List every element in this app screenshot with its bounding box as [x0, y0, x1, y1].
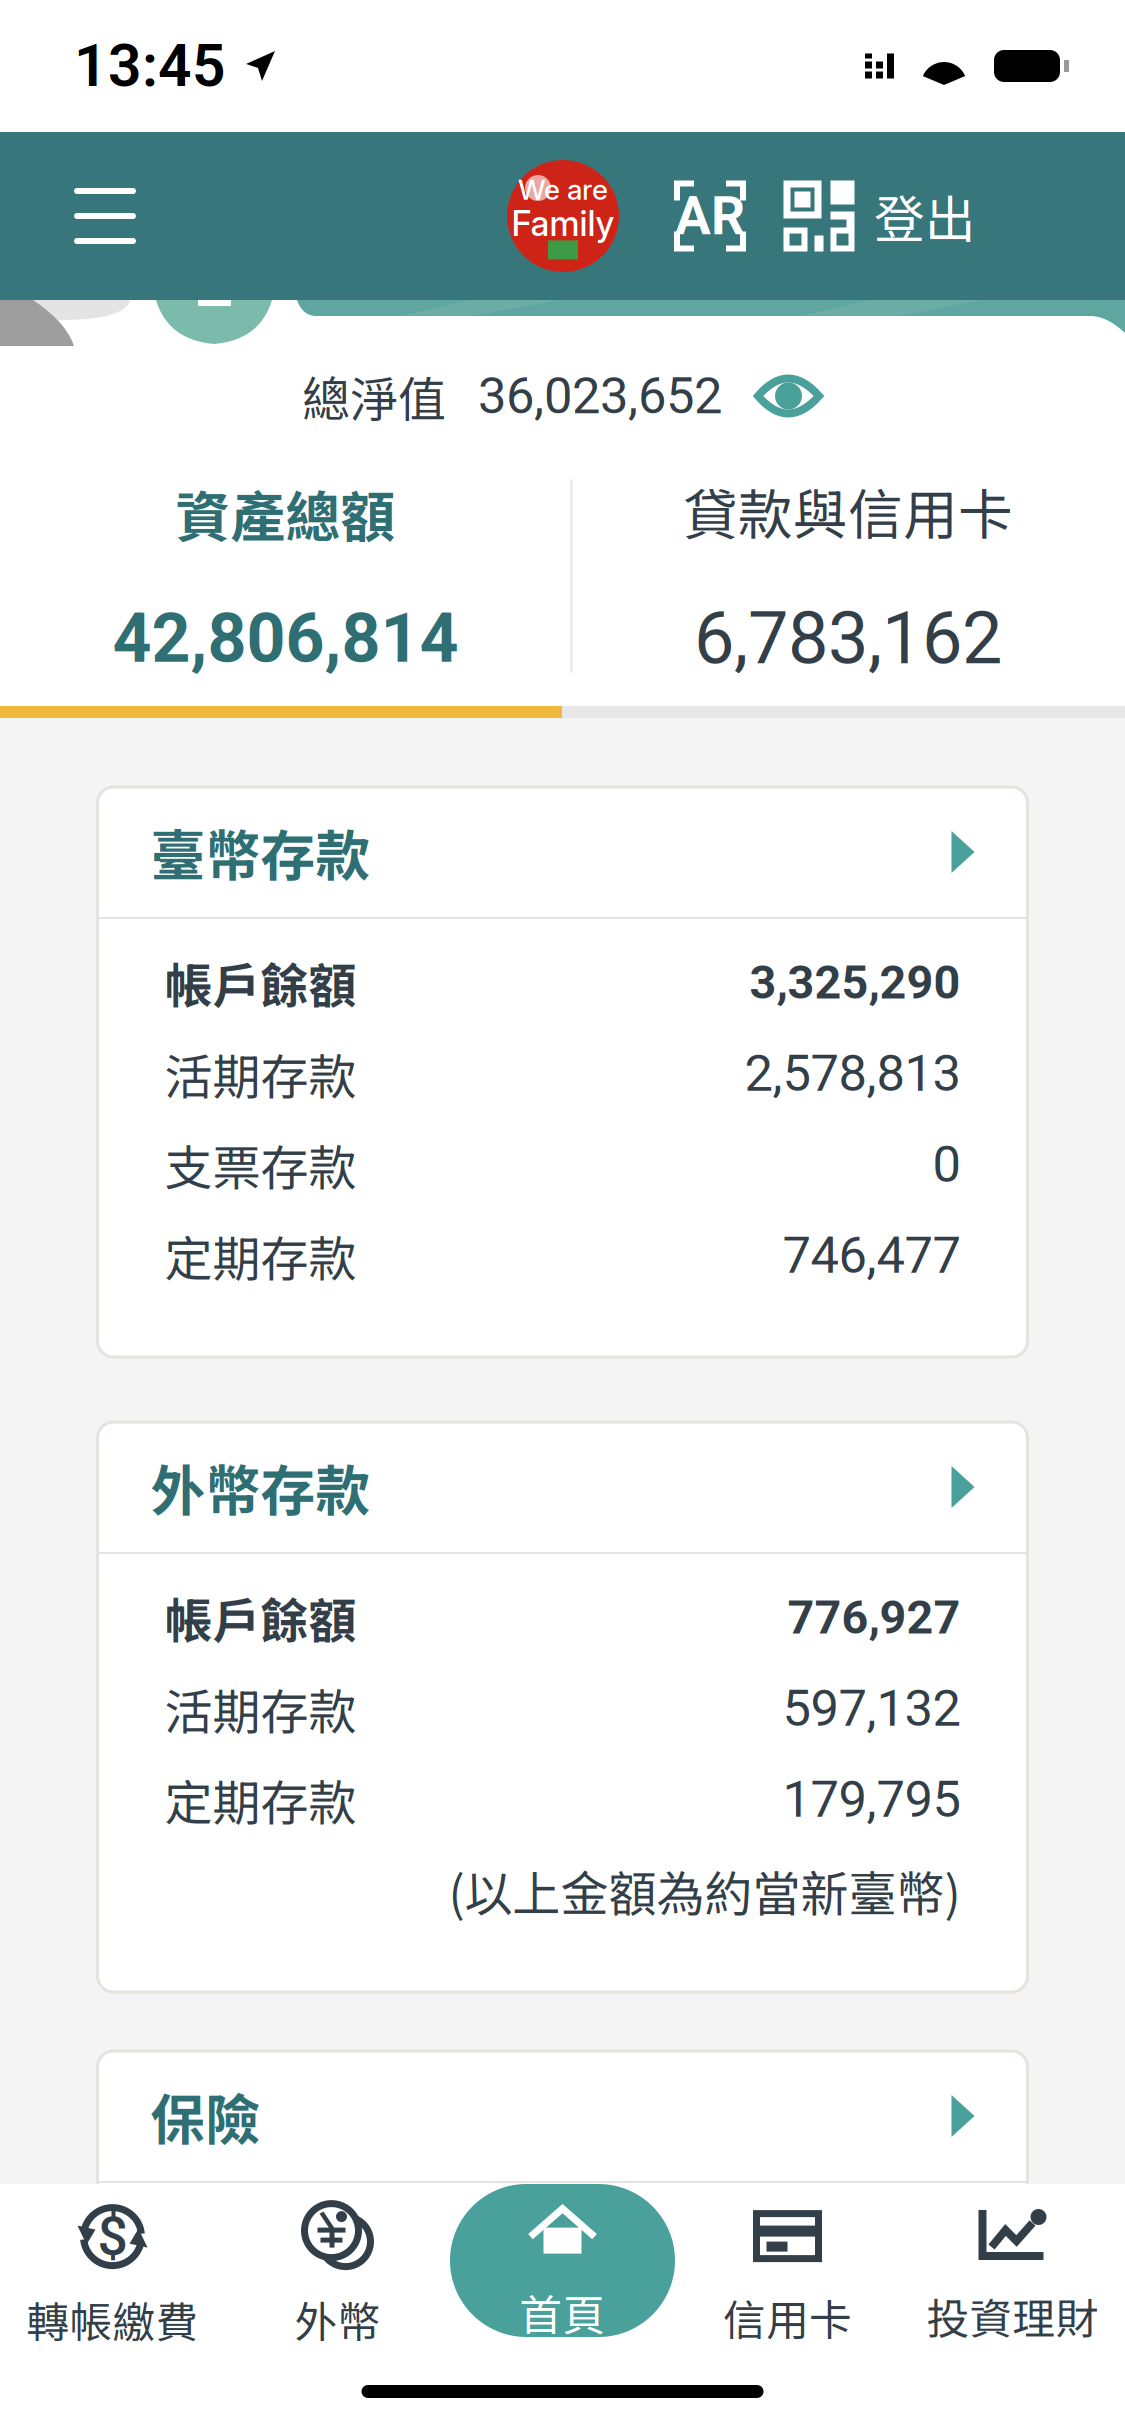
button[interactable]: Menu [0, 132, 136, 300]
staticText: 776,927 [787, 1590, 960, 1645]
button[interactable]: Scan QR code [764, 132, 874, 300]
button[interactable]: 信用卡 [675, 2184, 900, 2348]
staticText: 活期存款 [164, 1039, 356, 1108]
staticText: 外幣 [294, 2289, 380, 2350]
staticText: We are [518, 173, 608, 206]
staticText: (以上金額為約當新臺幣) [448, 1856, 960, 1925]
staticText: 13:45 [74, 32, 226, 100]
staticText: 信用卡 [723, 2287, 852, 2348]
staticText: 保險 [150, 2076, 260, 2156]
button[interactable]: 外幣存款 [97, 1422, 1027, 1552]
staticText: 3,325,290 [749, 955, 960, 1010]
staticText: 活期存款 [164, 1674, 356, 1743]
staticText: 42,806,814 [112, 599, 458, 678]
staticText: 登出 [874, 179, 976, 253]
staticText: 臺幣存款 [150, 812, 370, 892]
button[interactable]: 保險 [97, 2051, 1027, 2181]
staticText: 597,132 [782, 1679, 960, 1738]
staticText: 投資理財 [926, 2285, 1098, 2347]
staticText: 746,477 [782, 1226, 960, 1285]
staticText: Family [511, 202, 614, 244]
staticText: 外幣存款 [150, 1447, 370, 1527]
staticText: 貸款與信用卡 [683, 471, 1013, 550]
staticText: 定期存款 [164, 1765, 356, 1834]
staticText: 定期存款 [164, 1221, 356, 1290]
button[interactable]: Toggle balance visibility [754, 373, 823, 419]
staticText: 6,783,162 [694, 596, 1002, 681]
staticText: 資產總額 [175, 474, 395, 553]
button[interactable]: 投資理財 [900, 2184, 1125, 2348]
staticText: 支票存款 [164, 1130, 356, 1199]
staticText: 帳戶餘額 [164, 1583, 356, 1652]
staticText: 首頁 [519, 2282, 605, 2343]
staticText: 179,795 [782, 1770, 960, 1829]
staticText: 36,023,652 [478, 366, 722, 426]
staticText: 總淨值 [302, 361, 446, 431]
button[interactable]: AR [656, 132, 764, 300]
staticText: 轉帳繳費 [26, 2289, 198, 2350]
staticText: $ [97, 2205, 127, 2268]
button[interactable]: 首頁 [450, 2184, 675, 2348]
button[interactable]: $ [0, 2184, 225, 2348]
staticText: 帳戶餘額 [164, 948, 356, 1017]
staticText: 2,578,813 [744, 1044, 960, 1103]
button[interactable]: 登出 [874, 132, 1013, 300]
button[interactable]: 臺幣存款 [97, 787, 1027, 917]
staticText: 0 [932, 1135, 960, 1194]
staticText: AR [675, 185, 745, 247]
button[interactable]: 外幣 [225, 2184, 450, 2348]
